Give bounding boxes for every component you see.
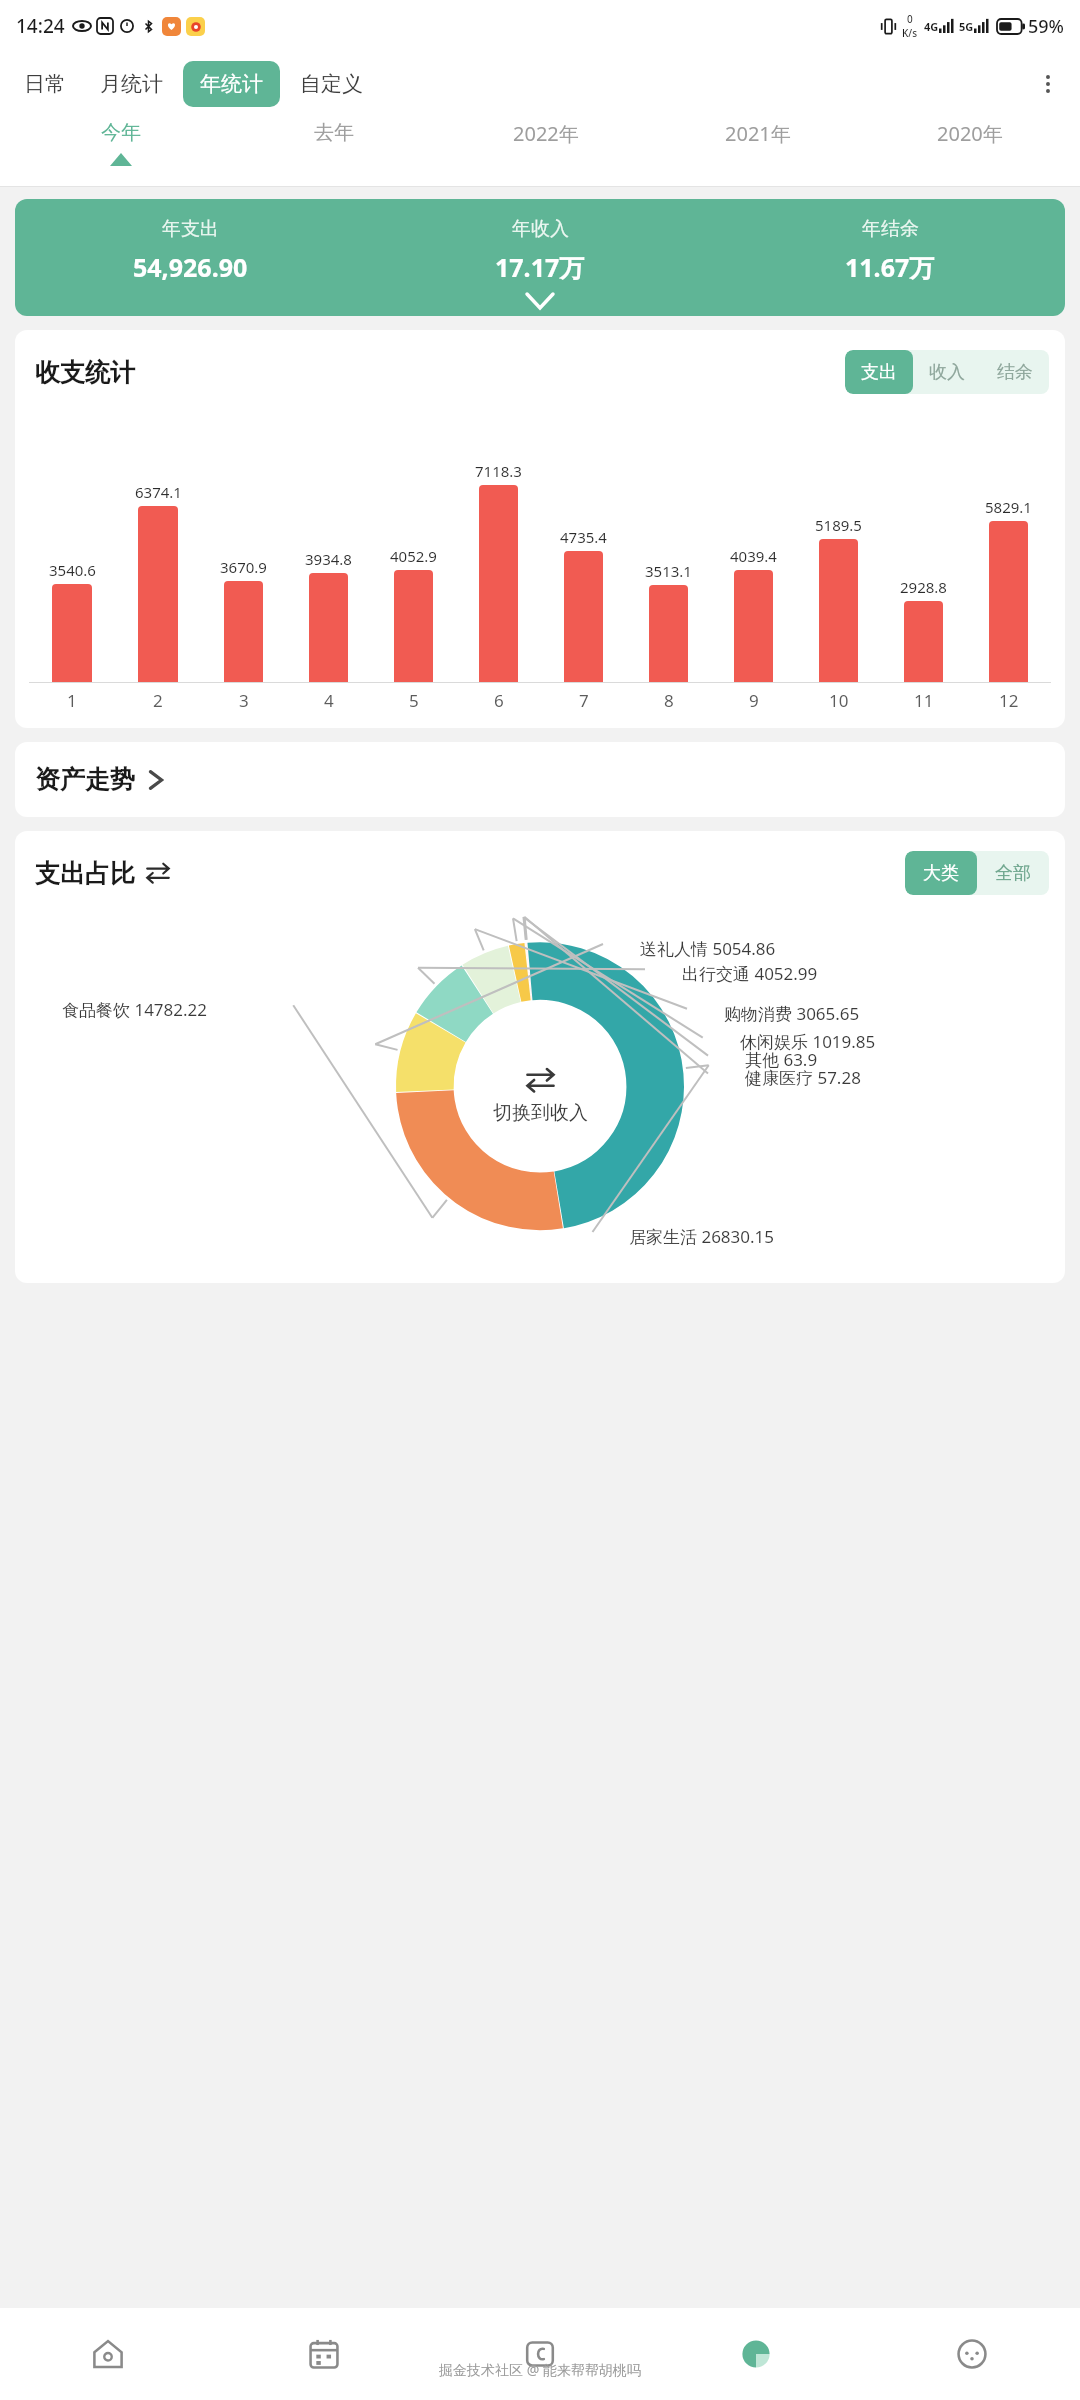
staticText: 59% — [1028, 14, 1064, 39]
staticText: 2020年 — [937, 120, 1003, 147]
staticText: 食品餐饮 14782.22 — [62, 998, 208, 1021]
staticText: 11 — [914, 689, 934, 712]
staticText: 4 — [324, 689, 334, 712]
button[interactable]: 自定义 — [294, 61, 369, 107]
button[interactable]: 切换到收入 — [487, 1061, 594, 1131]
staticText: 5829.1 — [985, 497, 1032, 517]
staticText: K/s — [902, 26, 918, 40]
staticText: 掘金技术社区 @ 能来帮帮胡桃吗 — [439, 2360, 641, 2379]
staticText: 5G — [959, 19, 974, 34]
staticText: 3513.1 — [645, 561, 692, 581]
staticText: 8 — [664, 689, 674, 712]
staticText: 0 — [907, 12, 913, 26]
button[interactable]: 全部 — [977, 851, 1049, 895]
staticText: 9 — [749, 689, 759, 712]
staticText: 6 — [494, 689, 504, 712]
button[interactable]: 年支出 — [15, 199, 1065, 316]
staticText: 收入 — [929, 361, 965, 384]
staticText: 居家生活 26830.15 — [629, 1225, 775, 1248]
button[interactable]: 去年 — [227, 116, 440, 170]
staticText: 3934.8 — [305, 549, 352, 569]
staticText: 自定义 — [300, 71, 363, 97]
button[interactable]: 日常 — [18, 61, 72, 107]
staticText: 送礼人情 5054.86 — [640, 937, 776, 960]
staticText: 14:24 — [16, 13, 65, 39]
staticText: 支出占比 — [35, 858, 135, 889]
staticText: 资产走势 — [35, 764, 135, 795]
button[interactable]: 支出 — [845, 350, 913, 394]
staticText: 年结余 — [862, 217, 919, 241]
staticText: 11.67万 — [845, 250, 935, 284]
staticText: 5189.5 — [815, 515, 862, 535]
staticText: 2021年 — [725, 120, 791, 147]
staticText: 年收入 — [512, 217, 569, 241]
staticText: 购物消费 3065.65 — [724, 1002, 860, 1025]
staticText: 7118.3 — [475, 461, 522, 481]
staticText: 1 — [67, 689, 77, 712]
staticText: 今年 — [101, 120, 141, 145]
button[interactable]: Wallet — [432, 2308, 648, 2400]
button[interactable]: More options — [1026, 62, 1070, 106]
button[interactable]: Switch chart — [145, 860, 171, 886]
staticText: 4052.9 — [390, 546, 437, 566]
staticText: 健康医疗 57.28 — [745, 1066, 861, 1089]
staticText: 去年 — [314, 120, 354, 145]
staticText: 3540.6 — [49, 560, 96, 580]
button[interactable]: 资产走势 — [15, 742, 1065, 817]
button[interactable]: 2021年 — [652, 116, 864, 172]
staticText: 12 — [999, 689, 1019, 712]
button[interactable]: 大类 — [905, 851, 977, 895]
staticText: 10 — [829, 689, 849, 712]
staticText: 3 — [239, 689, 249, 712]
staticText: 54,926.90 — [133, 250, 248, 284]
staticText: 7 — [579, 689, 589, 712]
button[interactable]: Calendar — [216, 2308, 432, 2400]
staticText: 6374.1 — [135, 482, 182, 502]
staticText: 大类 — [923, 862, 959, 885]
button[interactable]: Profile — [864, 2308, 1080, 2400]
staticText: 月统计 — [100, 71, 163, 97]
button[interactable]: 2020年 — [864, 116, 1076, 172]
button[interactable]: 月统计 — [94, 61, 169, 107]
button[interactable]: Home — [0, 2308, 216, 2400]
staticText: 其他 63.9 — [745, 1048, 818, 1071]
staticText: 收支统计 — [35, 357, 135, 388]
staticText: 17.17万 — [495, 250, 585, 284]
staticText: 2928.8 — [900, 577, 947, 597]
button[interactable]: 年统计 — [183, 61, 280, 107]
staticText: 3670.9 — [220, 557, 267, 577]
staticText: 结余 — [997, 361, 1033, 384]
staticText: 日常 — [24, 71, 66, 97]
button[interactable]: Statistics — [648, 2308, 864, 2400]
button[interactable]: 结余 — [981, 350, 1049, 394]
staticText: 年支出 — [162, 217, 219, 241]
staticText: 5 — [409, 689, 419, 712]
button[interactable]: 收入 — [913, 350, 981, 394]
staticText: 全部 — [995, 862, 1031, 885]
staticText: 4G — [924, 19, 939, 34]
button[interactable]: 2022年 — [440, 116, 652, 172]
staticText: 2022年 — [513, 120, 579, 147]
staticText: 年统计 — [200, 71, 263, 97]
staticText: 支出 — [861, 361, 897, 384]
button[interactable]: 今年 — [14, 116, 227, 170]
staticText: 4039.4 — [730, 546, 777, 566]
staticText: 出行交通 4052.99 — [682, 962, 818, 985]
staticText: 4735.4 — [560, 527, 607, 547]
staticText: 切换到收入 — [493, 1101, 588, 1125]
staticText: 休闲娱乐 1019.85 — [740, 1030, 876, 1053]
staticText: 2 — [153, 689, 163, 712]
